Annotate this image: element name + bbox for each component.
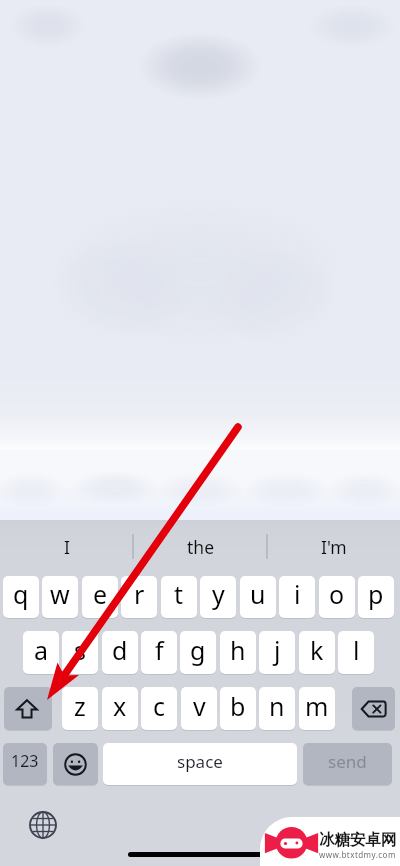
button[interactable]: I bbox=[0, 520, 134, 564]
button[interactable]: I'm bbox=[267, 520, 400, 564]
button[interactable]: 123 bbox=[3, 743, 47, 785]
staticText: 冰糖安卓网 bbox=[319, 830, 397, 850]
button[interactable]: o bbox=[319, 576, 355, 618]
staticText: www.btxtdmy.com bbox=[319, 849, 396, 860]
staticText: j bbox=[274, 633, 281, 667]
button[interactable]: x bbox=[102, 687, 138, 730]
button[interactable]: Emoji bbox=[53, 743, 98, 785]
staticText: I'm bbox=[321, 535, 347, 559]
staticText: n bbox=[269, 689, 285, 723]
button[interactable]: y bbox=[200, 576, 236, 618]
button[interactable]: Change keyboard bbox=[29, 811, 57, 839]
button[interactable]: b bbox=[220, 687, 256, 730]
staticText: x bbox=[113, 689, 127, 723]
staticText: the bbox=[187, 535, 215, 559]
button[interactable]: f bbox=[141, 631, 177, 674]
staticText: q bbox=[13, 577, 29, 611]
staticText: m bbox=[305, 689, 329, 723]
button[interactable]: space bbox=[103, 743, 297, 785]
button[interactable]: v bbox=[181, 687, 217, 730]
button[interactable]: n bbox=[259, 687, 295, 730]
button[interactable]: d bbox=[102, 631, 138, 674]
staticText: y bbox=[212, 577, 225, 611]
staticText: c bbox=[153, 689, 166, 723]
staticText: f bbox=[155, 633, 164, 667]
staticText: o bbox=[329, 577, 345, 611]
staticText: p bbox=[368, 577, 384, 611]
staticText: w bbox=[50, 577, 70, 611]
staticText: space bbox=[177, 750, 223, 773]
button[interactable]: Backspace bbox=[352, 687, 395, 730]
staticText: k bbox=[310, 633, 324, 667]
staticText: a bbox=[34, 633, 49, 667]
button[interactable]: i bbox=[279, 576, 315, 618]
staticText: send bbox=[328, 750, 367, 773]
button[interactable]: m bbox=[299, 687, 335, 730]
staticText: e bbox=[93, 577, 108, 611]
button[interactable]: a bbox=[23, 631, 59, 674]
button[interactable]: send bbox=[303, 743, 392, 785]
staticText: v bbox=[193, 689, 206, 723]
button[interactable]: j bbox=[259, 631, 295, 674]
button[interactable]: s bbox=[62, 631, 98, 674]
staticText: h bbox=[230, 633, 246, 667]
button[interactable]: r bbox=[121, 576, 157, 618]
button[interactable]: c bbox=[141, 687, 177, 730]
button[interactable]: u bbox=[240, 576, 276, 618]
button[interactable]: t bbox=[161, 576, 197, 618]
button[interactable]: w bbox=[42, 576, 78, 618]
button[interactable]: the bbox=[134, 520, 267, 564]
staticText: d bbox=[112, 633, 128, 667]
button[interactable]: l bbox=[338, 631, 374, 674]
button[interactable]: g bbox=[180, 631, 216, 674]
staticText: l bbox=[353, 633, 360, 667]
button[interactable]: Shift bbox=[4, 687, 52, 730]
staticText: 123 bbox=[11, 750, 39, 772]
button[interactable]: e bbox=[82, 576, 118, 618]
staticText: u bbox=[250, 577, 266, 611]
staticText: s bbox=[74, 633, 86, 667]
staticText: r bbox=[134, 577, 145, 611]
staticText: I bbox=[64, 535, 70, 559]
button[interactable]: z bbox=[62, 687, 98, 730]
button[interactable]: k bbox=[299, 631, 335, 674]
staticText: b bbox=[230, 689, 246, 723]
button[interactable]: h bbox=[220, 631, 256, 674]
staticText: g bbox=[190, 633, 206, 667]
button[interactable]: p bbox=[358, 576, 394, 618]
button[interactable]: q bbox=[3, 576, 39, 618]
staticText: z bbox=[74, 689, 86, 723]
staticText: i bbox=[294, 577, 301, 611]
staticText: t bbox=[174, 577, 184, 611]
